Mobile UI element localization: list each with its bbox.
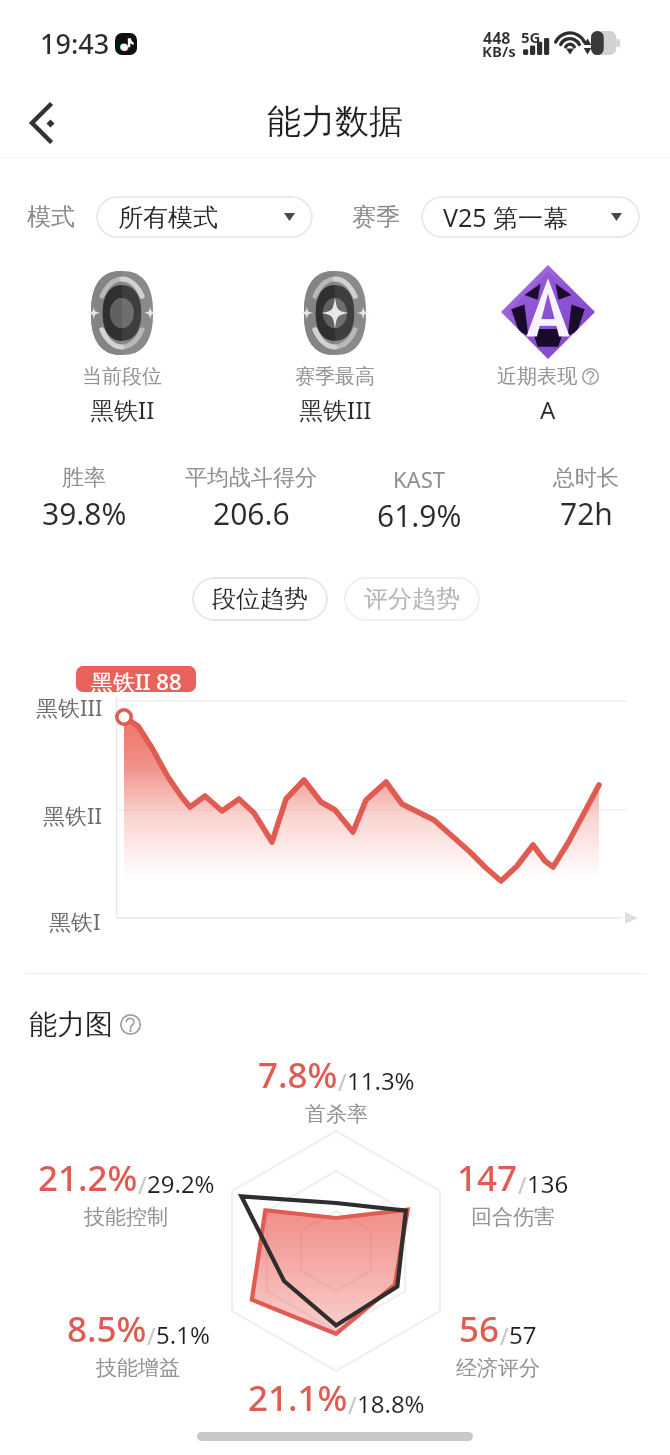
staticText: 黑铁I: [49, 906, 101, 936]
staticText: A: [540, 393, 556, 426]
button[interactable]: Back: [12, 88, 76, 152]
staticText: 总时长: [553, 464, 619, 492]
staticText: 黑铁III: [36, 692, 103, 722]
button[interactable]: 评分趋势: [344, 577, 480, 621]
staticText: 5G: [521, 27, 541, 47]
staticText: /: [518, 1169, 527, 1200]
staticText: 57: [509, 1318, 537, 1351]
staticText: 136: [527, 1167, 569, 1200]
staticText: 技能增益: [96, 1355, 180, 1381]
staticText: 回合伤害: [471, 1204, 555, 1230]
staticText: 147: [457, 1154, 518, 1202]
staticText: 21.2%: [38, 1154, 138, 1202]
staticText: KAST: [393, 464, 445, 494]
staticText: /: [147, 1320, 156, 1351]
staticText: 21.1%: [248, 1374, 348, 1422]
staticText: 当前段位: [82, 364, 162, 389]
staticText: 56: [459, 1305, 500, 1353]
staticText: 能力图: [29, 1007, 113, 1042]
button[interactable]: 所有模式: [96, 196, 313, 238]
staticText: 448: [483, 27, 511, 49]
staticText: 黑铁II: [43, 800, 102, 830]
button[interactable]: 段位趋势: [192, 577, 328, 621]
staticText: 技能控制: [84, 1204, 168, 1230]
staticText: 39.8%: [42, 493, 127, 534]
staticText: 模式: [27, 202, 75, 232]
button[interactable]: Help: [120, 1014, 141, 1035]
staticText: 72h: [560, 493, 613, 534]
staticText: 胜率: [62, 464, 106, 492]
staticText: 能力数据: [267, 100, 403, 143]
staticText: 61.9%: [377, 495, 462, 536]
staticText: 7.8%: [258, 1051, 338, 1099]
staticText: KB/s: [482, 41, 516, 61]
staticText: 经济评分: [456, 1355, 540, 1381]
staticText: 19:43: [40, 25, 110, 62]
staticText: 5.1%: [156, 1318, 210, 1351]
staticText: /: [338, 1066, 347, 1097]
staticText: 8.5%: [67, 1305, 147, 1353]
staticText: 黑铁III: [299, 393, 372, 426]
staticText: 黑铁II 88: [91, 666, 182, 692]
staticText: 近期表现: [497, 364, 577, 389]
staticText: V25 第一幕: [443, 200, 569, 234]
staticText: 段位趋势: [212, 584, 308, 614]
staticText: 首杀率: [305, 1101, 368, 1127]
staticText: 赛季: [352, 202, 400, 232]
staticText: 赛季最高: [295, 364, 375, 389]
button[interactable]: V25 第一幕: [421, 196, 640, 238]
staticText: /: [500, 1320, 509, 1351]
staticText: 206.6: [213, 493, 290, 534]
staticText: /: [138, 1169, 147, 1200]
staticText: 平均战斗得分: [185, 464, 317, 492]
staticText: 29.2%: [147, 1167, 215, 1200]
staticText: 18.8%: [357, 1387, 425, 1420]
staticText: 11.3%: [347, 1064, 415, 1097]
staticText: 所有模式: [118, 202, 218, 233]
staticText: 黑铁II: [90, 393, 155, 426]
staticText: 评分趋势: [364, 584, 460, 614]
staticText: /: [348, 1389, 357, 1420]
